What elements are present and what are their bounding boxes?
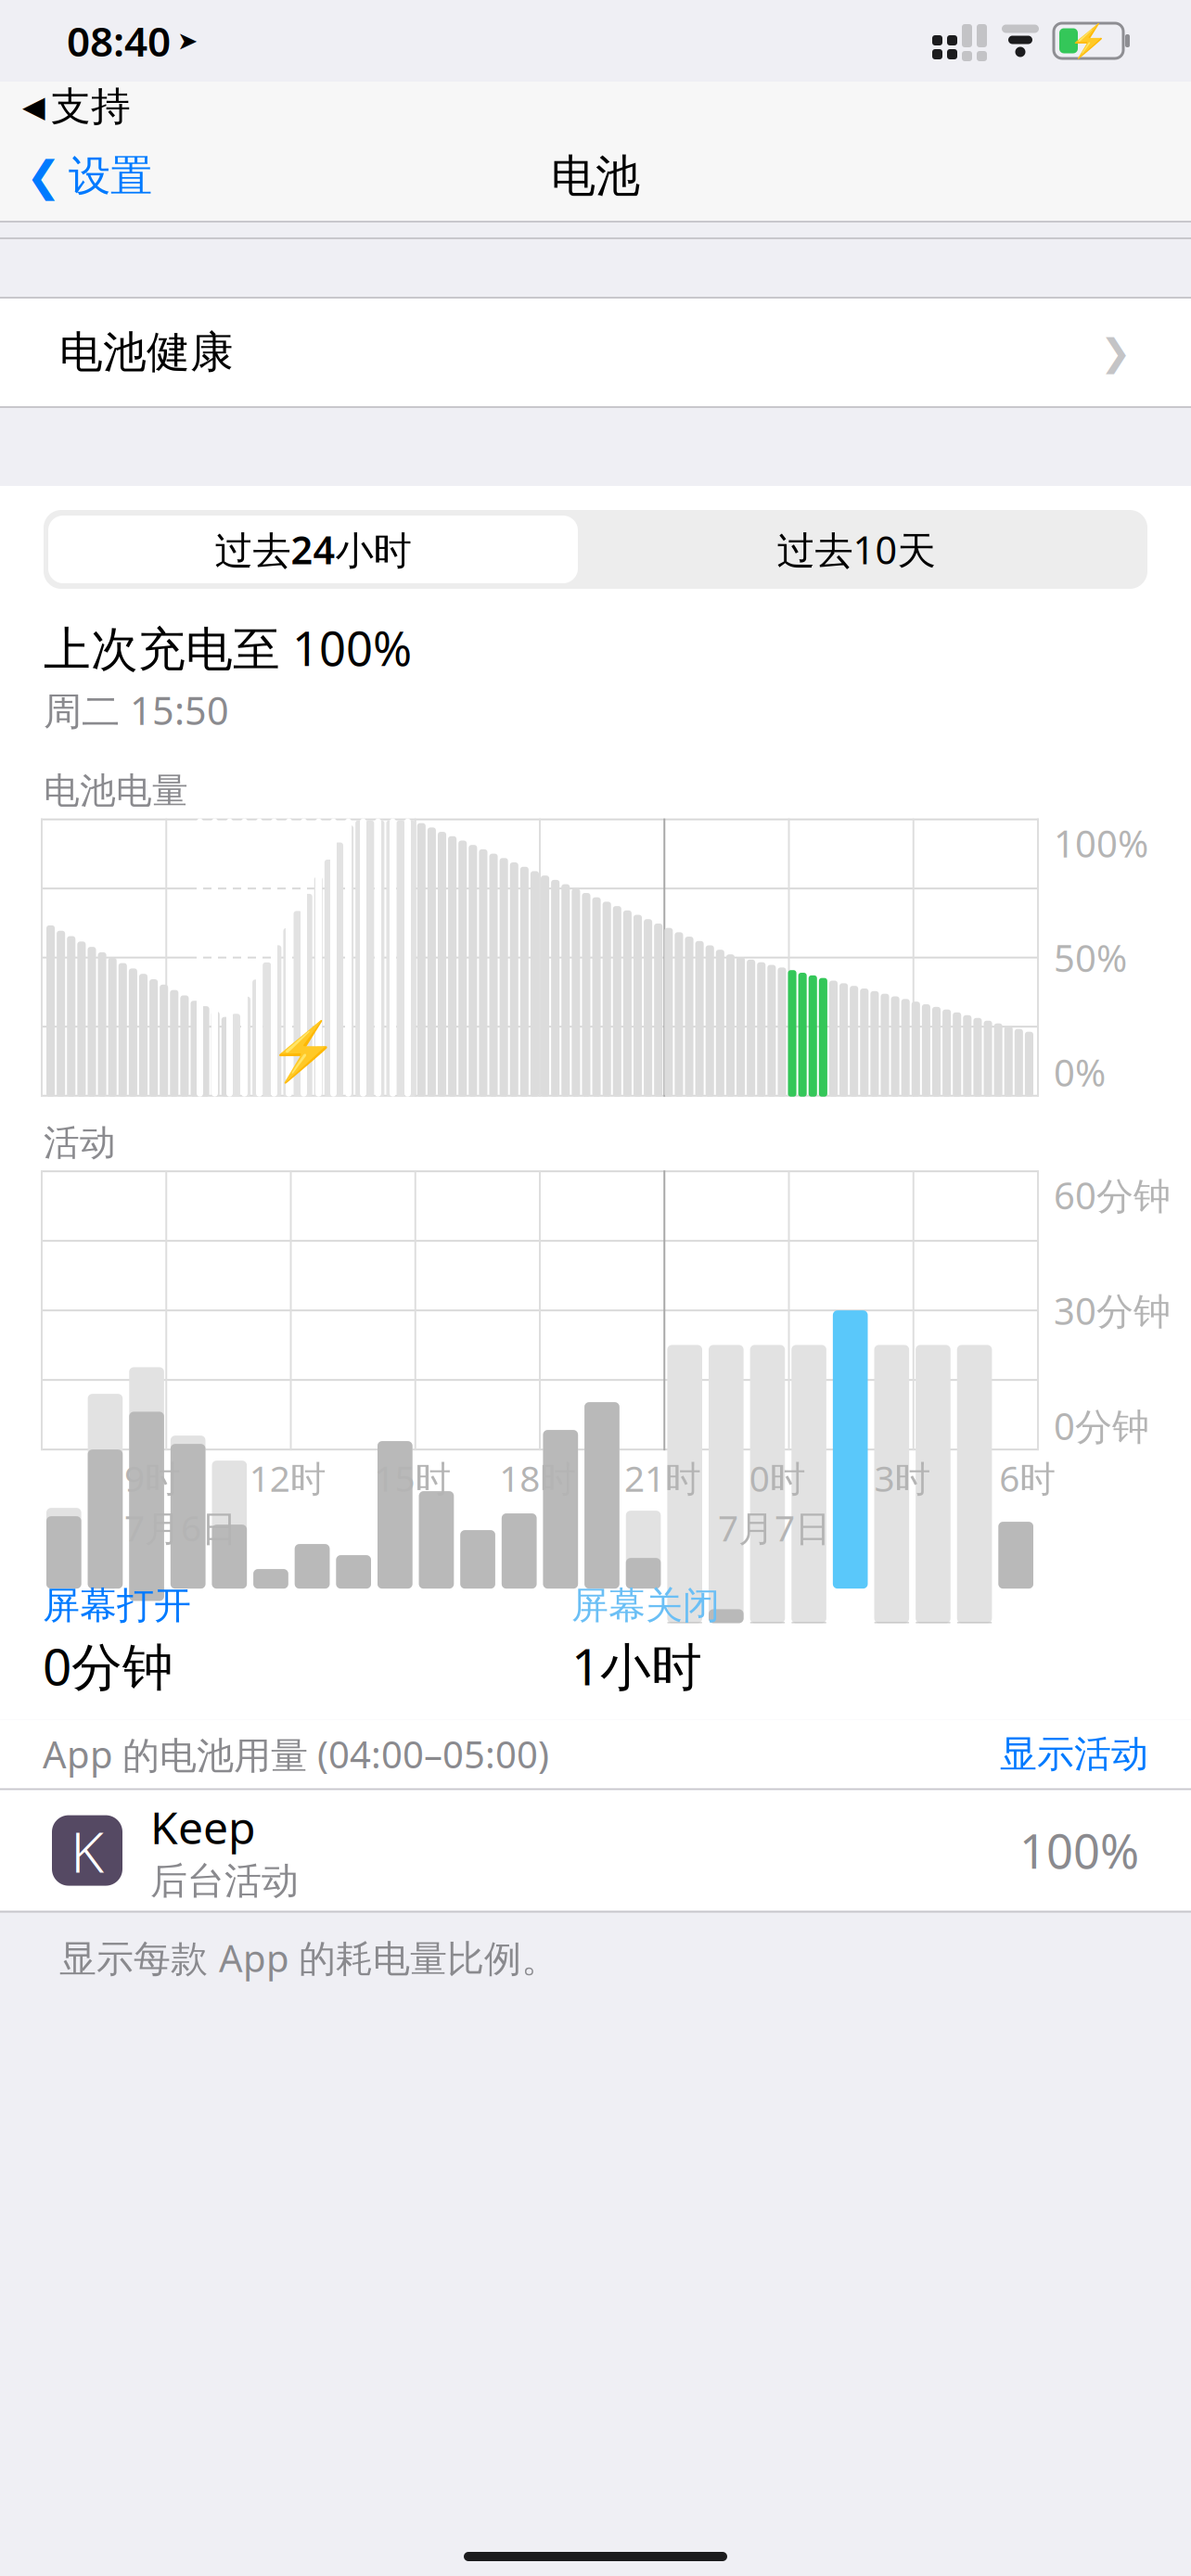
- button[interactable]: 显示活动: [1000, 1731, 1148, 1777]
- staticText: 0分钟: [1054, 1401, 1149, 1450]
- staticText: ◀: [22, 90, 45, 123]
- staticText: 上次充电至 100%: [44, 617, 412, 679]
- staticText: 60分钟: [1054, 1170, 1171, 1220]
- staticText: 过去10天: [777, 524, 935, 575]
- staticText: 7月6日: [124, 1504, 237, 1551]
- staticText: 18时: [499, 1454, 576, 1502]
- staticText: 活动: [44, 1121, 116, 1165]
- button[interactable]: 电池健康: [0, 299, 1191, 406]
- staticText: 后台活动: [150, 1858, 299, 1904]
- staticText: 显示每款 App 的耗电量比例。: [59, 1933, 558, 1982]
- staticText: 0分钟: [43, 1632, 173, 1699]
- staticText: ❮: [26, 152, 61, 200]
- staticText: 3时: [874, 1454, 931, 1502]
- staticText: 7月7日: [718, 1504, 831, 1551]
- staticText: ❯: [1100, 331, 1132, 373]
- staticText: K: [70, 1813, 104, 1888]
- staticText: 过去24小时: [215, 524, 411, 575]
- button[interactable]: 过去24小时: [48, 516, 578, 583]
- staticText: 周二 15:50: [44, 685, 229, 736]
- staticText: ⚡: [269, 1019, 339, 1084]
- staticText: 08:40: [67, 14, 171, 68]
- staticText: 30分钟: [1054, 1286, 1171, 1335]
- staticText: 电池电量: [44, 769, 188, 813]
- staticText: 6时: [999, 1454, 1056, 1502]
- staticText: 9时: [124, 1454, 181, 1502]
- staticText: 15时: [374, 1454, 451, 1502]
- button[interactable]: 过去10天: [578, 516, 1134, 583]
- staticText: ⚡: [1069, 22, 1108, 59]
- staticText: 设置: [69, 150, 152, 202]
- staticText: 21时: [624, 1454, 701, 1502]
- staticText: 电池健康: [59, 326, 234, 379]
- staticText: 屏幕关闭: [571, 1583, 720, 1628]
- staticText: 显示活动: [1000, 1731, 1148, 1777]
- staticText: Keep: [150, 1797, 256, 1856]
- staticText: 支持: [51, 82, 131, 131]
- staticText: 电池: [551, 149, 640, 204]
- staticText: 0时: [749, 1454, 806, 1502]
- staticText: 1小时: [571, 1632, 702, 1699]
- staticText: 50%: [1054, 933, 1127, 982]
- staticText: 12时: [249, 1454, 326, 1502]
- staticText: App 的电池用量 (04:00–05:00): [43, 1729, 549, 1779]
- staticText: 0%: [1054, 1047, 1106, 1097]
- staticText: ➤: [177, 27, 198, 55]
- staticText: 屏幕打开: [43, 1583, 191, 1628]
- staticText: 100%: [1054, 819, 1148, 868]
- button[interactable]: ❮: [0, 141, 152, 211]
- staticText: 100%: [1019, 1819, 1139, 1882]
